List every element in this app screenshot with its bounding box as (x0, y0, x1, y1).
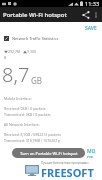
staticText: MORE (87, 148, 96, 158)
staticText: Transmitted: 0KB / 0 packets (4, 112, 51, 117)
staticText: SAVE (85, 25, 97, 31)
staticText: 9,300 (27, 49, 36, 54)
button[interactable]: SAVE (80, 22, 102, 34)
staticText: 8,7 (2, 61, 30, 88)
staticText: Turn on Portable Wi-Fi hotspot (20, 151, 78, 156)
button[interactable]: Turn on Portable Wi-Fi hotspot (12, 148, 85, 158)
staticText: Mobile Interface: (4, 96, 32, 101)
staticText: Received: 0KB / 0 packets (4, 106, 46, 111)
button[interactable]: MORE (85, 146, 98, 160)
staticText: Лучшие бесплатные программы (41, 161, 89, 165)
staticText: Network Traffic Statistics (12, 36, 59, 41)
staticText: 292,7M (8, 49, 21, 54)
staticText: 11:33 (85, 0, 100, 7)
staticText: Portable Wi-Fi hotspot (3, 11, 67, 19)
staticText: All Network Interface: (4, 122, 40, 127)
button[interactable]: Share (80, 9, 91, 20)
staticText: Received: 8,9GB / 6982213 packets (4, 132, 61, 137)
staticText: GB (31, 75, 43, 86)
staticText: B (4, 55, 7, 60)
button[interactable]: More options (91, 10, 100, 19)
staticText: FREESOFT (41, 165, 94, 180)
staticText: Transmitted: 318,7MB / 1676202 p (4, 138, 61, 143)
